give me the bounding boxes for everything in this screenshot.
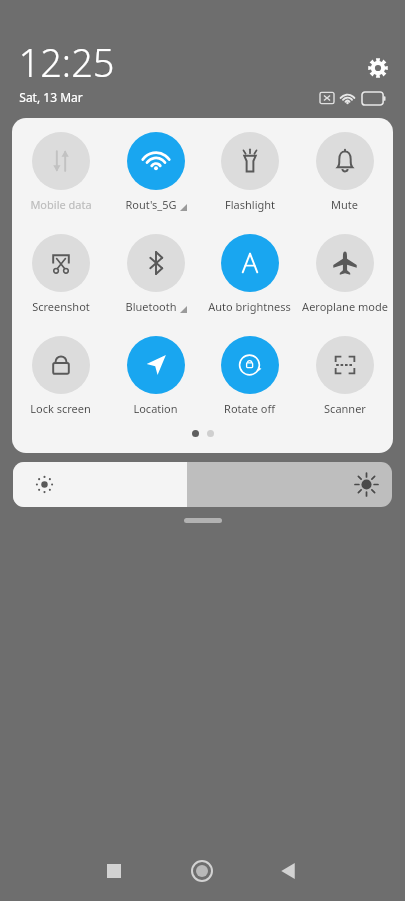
button[interactable]: Screenshot — [14, 234, 107, 314]
button[interactable]: Aeroplane mode — [298, 234, 391, 314]
staticText: Lock screen — [30, 401, 91, 416]
button[interactable]: Lock screen — [14, 336, 107, 416]
staticText: Aeroplane mode — [302, 299, 388, 314]
button[interactable]: Settings — [362, 52, 394, 84]
staticText: Sat, 13 Mar — [19, 89, 83, 105]
button[interactable]: Home — [186, 855, 218, 887]
staticText: 12:25 — [18, 36, 115, 88]
button[interactable]: Location — [109, 336, 202, 416]
button[interactable]: Mobile data — [14, 132, 107, 212]
staticText: Location — [133, 401, 178, 416]
staticText: Auto brightness — [208, 299, 291, 314]
staticText: Flashlight — [225, 197, 275, 212]
button[interactable]: Rout's_5G — [109, 132, 202, 212]
staticText: Bluetooth — [125, 299, 177, 314]
staticText: Scanner — [324, 401, 366, 416]
staticText: Rotate off — [224, 401, 275, 416]
button[interactable]: Scanner — [298, 336, 391, 416]
button[interactable]: Brightness — [13, 462, 392, 507]
staticText: Mobile data — [30, 197, 92, 212]
staticText: Mute — [331, 197, 358, 212]
button[interactable]: Auto brightness — [203, 234, 296, 314]
button[interactable]: Mute — [298, 132, 391, 212]
button[interactable]: Rotate off — [203, 336, 296, 416]
button[interactable]: Bluetooth — [109, 234, 202, 314]
button[interactable]: Recents — [98, 855, 130, 887]
staticText: Rout's_5G — [125, 197, 177, 212]
button[interactable]: Back — [272, 855, 304, 887]
staticText: Screenshot — [32, 299, 90, 314]
button[interactable]: Flashlight — [203, 132, 296, 212]
